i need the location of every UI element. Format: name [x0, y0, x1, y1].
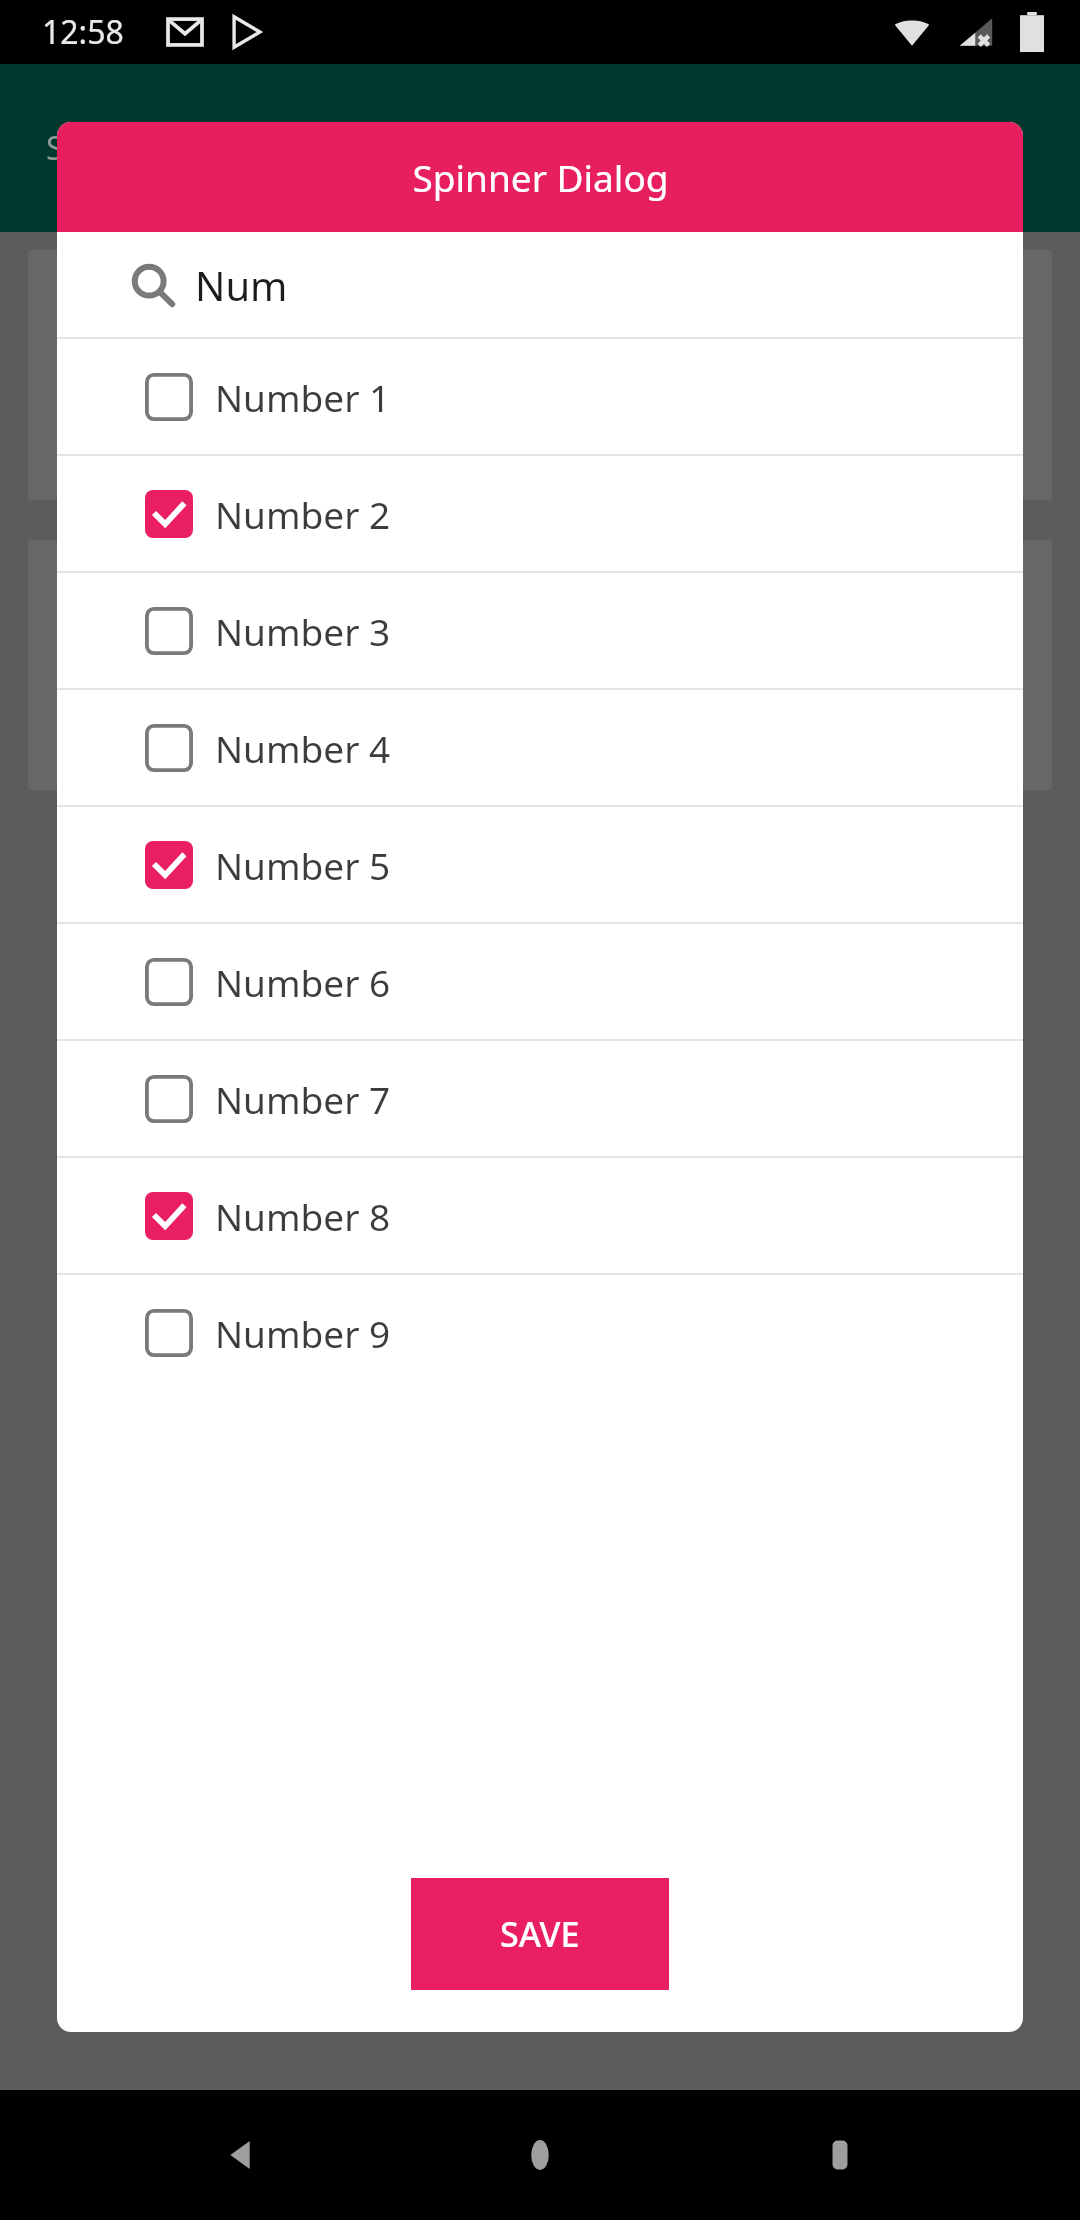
- staticText: Number 8: [215, 1191, 391, 1241]
- staticText: Number 4: [215, 723, 391, 773]
- button[interactable]: Number 4: [57, 690, 1023, 805]
- button[interactable]: Number 2: [57, 456, 1023, 571]
- button[interactable]: Number 1: [57, 339, 1023, 454]
- button[interactable]: Number 8: [57, 1158, 1023, 1273]
- staticText: Number 9: [215, 1308, 391, 1358]
- button[interactable]: Number 9: [57, 1275, 1023, 1390]
- button[interactable]: Number 5: [57, 807, 1023, 922]
- staticText: SAVE: [500, 1911, 580, 1957]
- staticText: Number 1: [215, 372, 391, 422]
- other: Recent apps: [818, 2133, 862, 2177]
- staticText: Number 2: [215, 489, 391, 539]
- other: Home: [518, 2133, 562, 2177]
- staticText: 12:58: [42, 10, 124, 54]
- staticText: S: [46, 126, 64, 170]
- staticText: Num: [195, 258, 288, 312]
- button[interactable]: Number 3: [57, 573, 1023, 688]
- staticText: Number 3: [215, 606, 391, 656]
- staticText: Spinner Dialog: [412, 152, 669, 202]
- staticText: Number 5: [215, 840, 391, 890]
- other: Back: [218, 2133, 262, 2177]
- staticText: Number 7: [215, 1074, 391, 1124]
- button[interactable]: Number 6: [57, 924, 1023, 1039]
- staticText: Number 6: [215, 957, 391, 1007]
- other: Search: [129, 261, 177, 309]
- button[interactable]: SAVE: [411, 1878, 669, 1990]
- button[interactable]: Search: [129, 232, 1023, 337]
- button[interactable]: Number 7: [57, 1041, 1023, 1156]
